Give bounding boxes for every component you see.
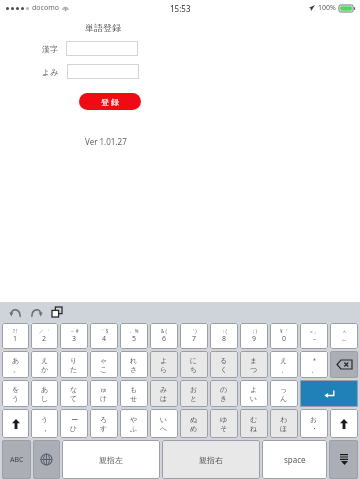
button[interactable]: を bbox=[2, 380, 29, 407]
staticText: space bbox=[284, 454, 306, 465]
button[interactable]: り bbox=[60, 351, 88, 378]
button[interactable]: お bbox=[300, 409, 328, 438]
button[interactable]: よ bbox=[240, 380, 268, 407]
staticText: 「 $ bbox=[100, 328, 109, 334]
button[interactable]: Copy bbox=[49, 304, 65, 320]
button[interactable]: に bbox=[180, 351, 208, 378]
staticText: し bbox=[41, 394, 49, 403]
staticText: る bbox=[220, 356, 228, 365]
staticText: と bbox=[190, 394, 198, 403]
button[interactable]: あ bbox=[31, 380, 58, 407]
button[interactable]: よ bbox=[150, 351, 178, 378]
staticText: け bbox=[100, 394, 108, 403]
staticText: く bbox=[220, 365, 228, 374]
button[interactable]: & ( bbox=[150, 323, 178, 349]
staticText: ／ ゛ bbox=[39, 328, 50, 334]
button[interactable]: ? ! bbox=[2, 323, 29, 349]
button[interactable]: な bbox=[60, 380, 88, 407]
staticText: も bbox=[130, 385, 138, 394]
button[interactable]: え bbox=[31, 351, 58, 378]
button[interactable]: も bbox=[120, 380, 148, 407]
button[interactable]: る bbox=[210, 351, 238, 378]
staticText: ～ # bbox=[70, 328, 79, 334]
staticText: ? ! bbox=[13, 328, 18, 334]
staticText: お bbox=[190, 385, 198, 394]
button[interactable]: む bbox=[240, 409, 268, 438]
button[interactable]: え bbox=[270, 351, 298, 378]
staticText: ゅ bbox=[100, 385, 108, 394]
button[interactable]: Delete bbox=[330, 351, 358, 378]
button[interactable]: み bbox=[150, 380, 178, 407]
button[interactable]: う bbox=[31, 409, 58, 438]
button[interactable]: 」 % bbox=[120, 323, 148, 349]
staticText: 4 bbox=[102, 334, 107, 344]
staticText: え bbox=[41, 356, 49, 365]
staticText: 5 bbox=[132, 334, 137, 344]
button[interactable]: ／ ゛ bbox=[31, 323, 58, 349]
button[interactable]: 親指左 bbox=[62, 440, 160, 479]
button[interactable]: Hide keyboard bbox=[329, 440, 358, 479]
staticText: は bbox=[160, 394, 168, 403]
staticText: や bbox=[130, 415, 138, 424]
button[interactable]: れ bbox=[120, 351, 148, 378]
staticText: か bbox=[41, 365, 49, 374]
button[interactable]: ま bbox=[240, 351, 268, 378]
button[interactable]: ぬ bbox=[180, 409, 208, 438]
button[interactable]: Undo bbox=[7, 304, 23, 320]
button[interactable]: Shift bbox=[2, 409, 29, 438]
staticText: ひ bbox=[70, 424, 78, 433]
button[interactable]: Shift bbox=[330, 409, 358, 438]
button[interactable]: ろ bbox=[90, 409, 118, 438]
button[interactable]: 親指右 bbox=[162, 440, 260, 479]
button[interactable]: ～ # bbox=[60, 323, 88, 349]
button[interactable]: : ( bbox=[210, 323, 238, 349]
button[interactable]: わ bbox=[270, 409, 298, 438]
button[interactable]: Enter bbox=[300, 380, 358, 407]
staticText: 100% bbox=[318, 3, 336, 13]
button[interactable]: ー bbox=[60, 409, 88, 438]
staticText: 、 bbox=[281, 365, 288, 374]
button[interactable]: ゃ bbox=[90, 351, 118, 378]
staticText: り bbox=[70, 356, 78, 365]
staticText: ね bbox=[250, 424, 258, 433]
button[interactable]: ' ) bbox=[180, 323, 208, 349]
button[interactable]: 登 録 bbox=[79, 93, 141, 110]
button[interactable]: space bbox=[262, 440, 327, 479]
button[interactable]: あ bbox=[2, 351, 29, 378]
staticText: う bbox=[12, 394, 20, 403]
button[interactable]: Change keyboard bbox=[33, 440, 60, 479]
button[interactable]: Redo bbox=[28, 304, 44, 320]
button[interactable] bbox=[66, 41, 138, 56]
button[interactable]: お bbox=[180, 380, 208, 407]
staticText: ^ bbox=[343, 329, 346, 336]
staticText: え bbox=[280, 356, 288, 365]
button[interactable]: や bbox=[120, 409, 148, 438]
staticText: わ bbox=[280, 415, 288, 424]
staticText: ち bbox=[190, 365, 198, 374]
staticText: 」 % bbox=[129, 328, 139, 334]
staticText: ， bbox=[42, 424, 49, 433]
button[interactable]: ABC bbox=[2, 440, 31, 479]
staticText: み bbox=[160, 385, 168, 394]
button[interactable]: = 」 bbox=[300, 323, 328, 349]
button[interactable]: 「 $ bbox=[90, 323, 118, 349]
button[interactable] bbox=[67, 64, 139, 79]
staticText: お bbox=[310, 415, 318, 424]
button[interactable]: ＊ bbox=[300, 351, 328, 378]
button[interactable]: ゆ bbox=[210, 409, 238, 438]
staticText: ほ bbox=[280, 424, 288, 433]
staticText: 単語登録 bbox=[85, 22, 121, 33]
staticText: 1 bbox=[13, 334, 18, 344]
staticText: よみ bbox=[42, 67, 59, 77]
button[interactable]: ; ) bbox=[240, 323, 268, 349]
button[interactable]: い bbox=[150, 409, 178, 438]
staticText: ま bbox=[250, 356, 258, 365]
button[interactable]: の bbox=[210, 380, 238, 407]
button[interactable]: っ bbox=[270, 380, 298, 407]
staticText: こ bbox=[100, 365, 108, 374]
button[interactable]: ^ bbox=[330, 323, 358, 349]
button[interactable]: ゅ bbox=[90, 380, 118, 407]
staticText: よ bbox=[250, 385, 258, 394]
staticText: そ bbox=[220, 424, 228, 433]
button[interactable]: ¥ 「 bbox=[270, 323, 298, 349]
